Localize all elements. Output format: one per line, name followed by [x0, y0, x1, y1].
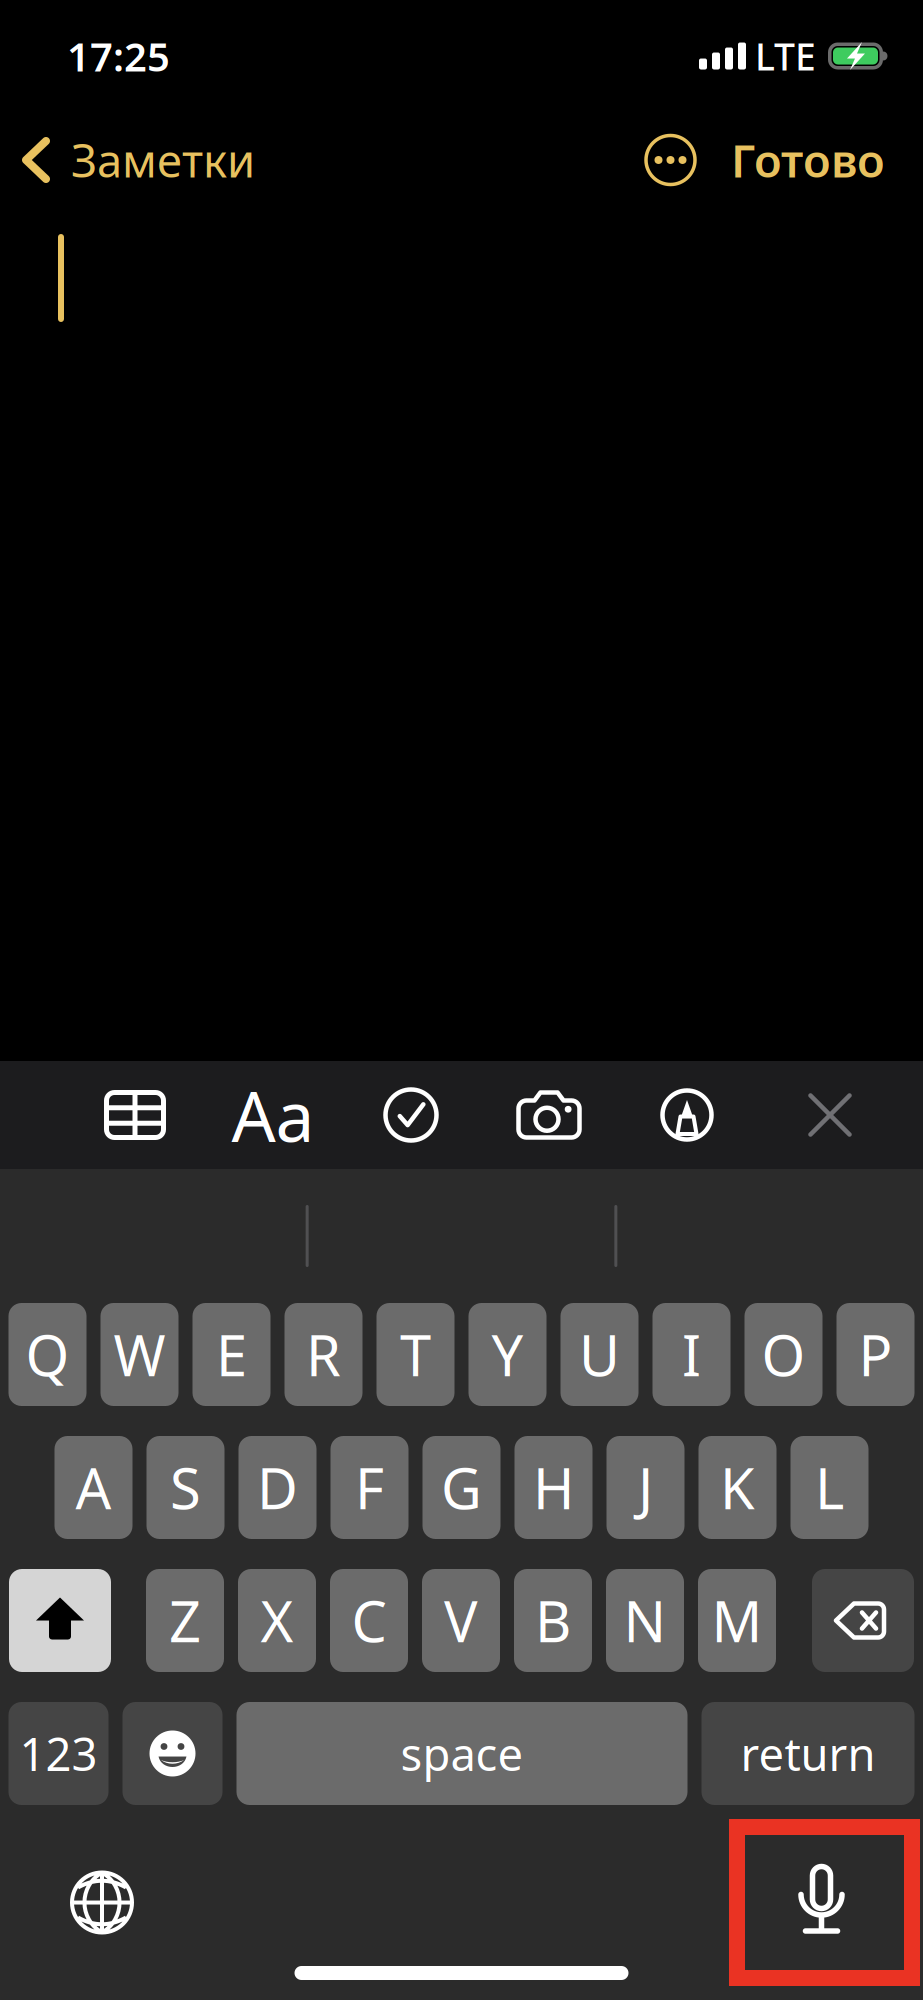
button[interactable]: N	[606, 1569, 684, 1672]
staticText: H	[533, 1450, 574, 1525]
button[interactable]: J	[606, 1436, 684, 1539]
button[interactable]: 123	[8, 1702, 108, 1805]
staticText: 17:25	[67, 29, 170, 82]
button[interactable]: I	[652, 1303, 730, 1406]
staticText: S	[170, 1450, 201, 1525]
button[interactable]: X	[238, 1569, 316, 1672]
button[interactable]: G	[422, 1436, 500, 1539]
staticText: B	[535, 1583, 571, 1658]
button[interactable]: Switch keyboard	[32, 1819, 172, 1986]
button[interactable]: O	[744, 1303, 822, 1406]
button[interactable]: Готово	[705, 114, 923, 206]
staticText: X	[260, 1583, 293, 1658]
staticText: G	[441, 1450, 482, 1525]
staticText: I	[682, 1317, 701, 1392]
button[interactable]: K	[698, 1436, 776, 1539]
button[interactable]: Table	[66, 1061, 204, 1169]
staticText: C	[351, 1583, 386, 1658]
button[interactable]: Close	[756, 1061, 894, 1169]
staticText: P	[858, 1317, 892, 1392]
staticText: W	[113, 1317, 165, 1392]
button[interactable]: Format	[204, 1061, 342, 1169]
button[interactable]: Z	[146, 1569, 224, 1672]
staticText: U	[579, 1317, 620, 1392]
button[interactable]: T	[376, 1303, 454, 1406]
button[interactable]: B	[514, 1569, 592, 1672]
staticText: LTE	[755, 31, 816, 81]
staticText: M	[711, 1583, 762, 1658]
button[interactable]: Y	[468, 1303, 546, 1406]
staticText: V	[444, 1583, 478, 1658]
button[interactable]: W	[100, 1303, 178, 1406]
button[interactable]: U	[560, 1303, 638, 1406]
button[interactable]: H	[514, 1436, 592, 1539]
button[interactable]: Shift	[9, 1569, 111, 1672]
staticText: K	[720, 1450, 755, 1525]
button[interactable]: M	[698, 1569, 776, 1672]
staticText: T	[400, 1317, 431, 1392]
button[interactable]: Markup	[618, 1061, 756, 1169]
button[interactable]: D	[238, 1436, 316, 1539]
staticText: Y	[491, 1317, 523, 1392]
button[interactable]: C	[330, 1569, 408, 1672]
staticText: A	[75, 1450, 111, 1525]
button[interactable]: Checklist	[342, 1061, 480, 1169]
staticText: 123	[19, 1723, 97, 1784]
button[interactable]: space	[236, 1702, 687, 1805]
button[interactable]: return	[701, 1702, 914, 1805]
button[interactable]: F	[330, 1436, 408, 1539]
staticText: Готово	[731, 130, 885, 190]
staticText: J	[638, 1450, 653, 1525]
staticText: O	[761, 1317, 805, 1392]
staticText: return	[740, 1723, 875, 1784]
staticText: L	[815, 1450, 844, 1525]
button[interactable]: More	[620, 116, 705, 204]
staticText: F	[355, 1450, 384, 1525]
button[interactable]: V	[422, 1569, 500, 1672]
button[interactable]: Emoji	[122, 1702, 222, 1805]
button[interactable]: Q	[8, 1303, 86, 1406]
staticText: E	[216, 1317, 247, 1392]
button[interactable]: R	[284, 1303, 362, 1406]
button[interactable]: S	[146, 1436, 224, 1539]
staticText: N	[623, 1583, 666, 1658]
button[interactable]: P	[836, 1303, 914, 1406]
staticText: R	[306, 1317, 341, 1392]
button[interactable]: L	[790, 1436, 868, 1539]
staticText: Aa	[231, 1069, 314, 1161]
button[interactable]: Delete	[812, 1569, 914, 1672]
staticText: Заметки	[71, 130, 255, 190]
staticText: Q	[25, 1317, 69, 1392]
button[interactable]: Camera	[480, 1061, 618, 1169]
button[interactable]: E	[192, 1303, 270, 1406]
button[interactable]: A	[54, 1436, 132, 1539]
staticText: D	[257, 1450, 298, 1525]
staticText: space	[400, 1723, 523, 1784]
button[interactable]: Dictation	[729, 1819, 920, 1986]
button[interactable]: Заметки	[0, 114, 269, 206]
staticText: Z	[169, 1583, 201, 1658]
